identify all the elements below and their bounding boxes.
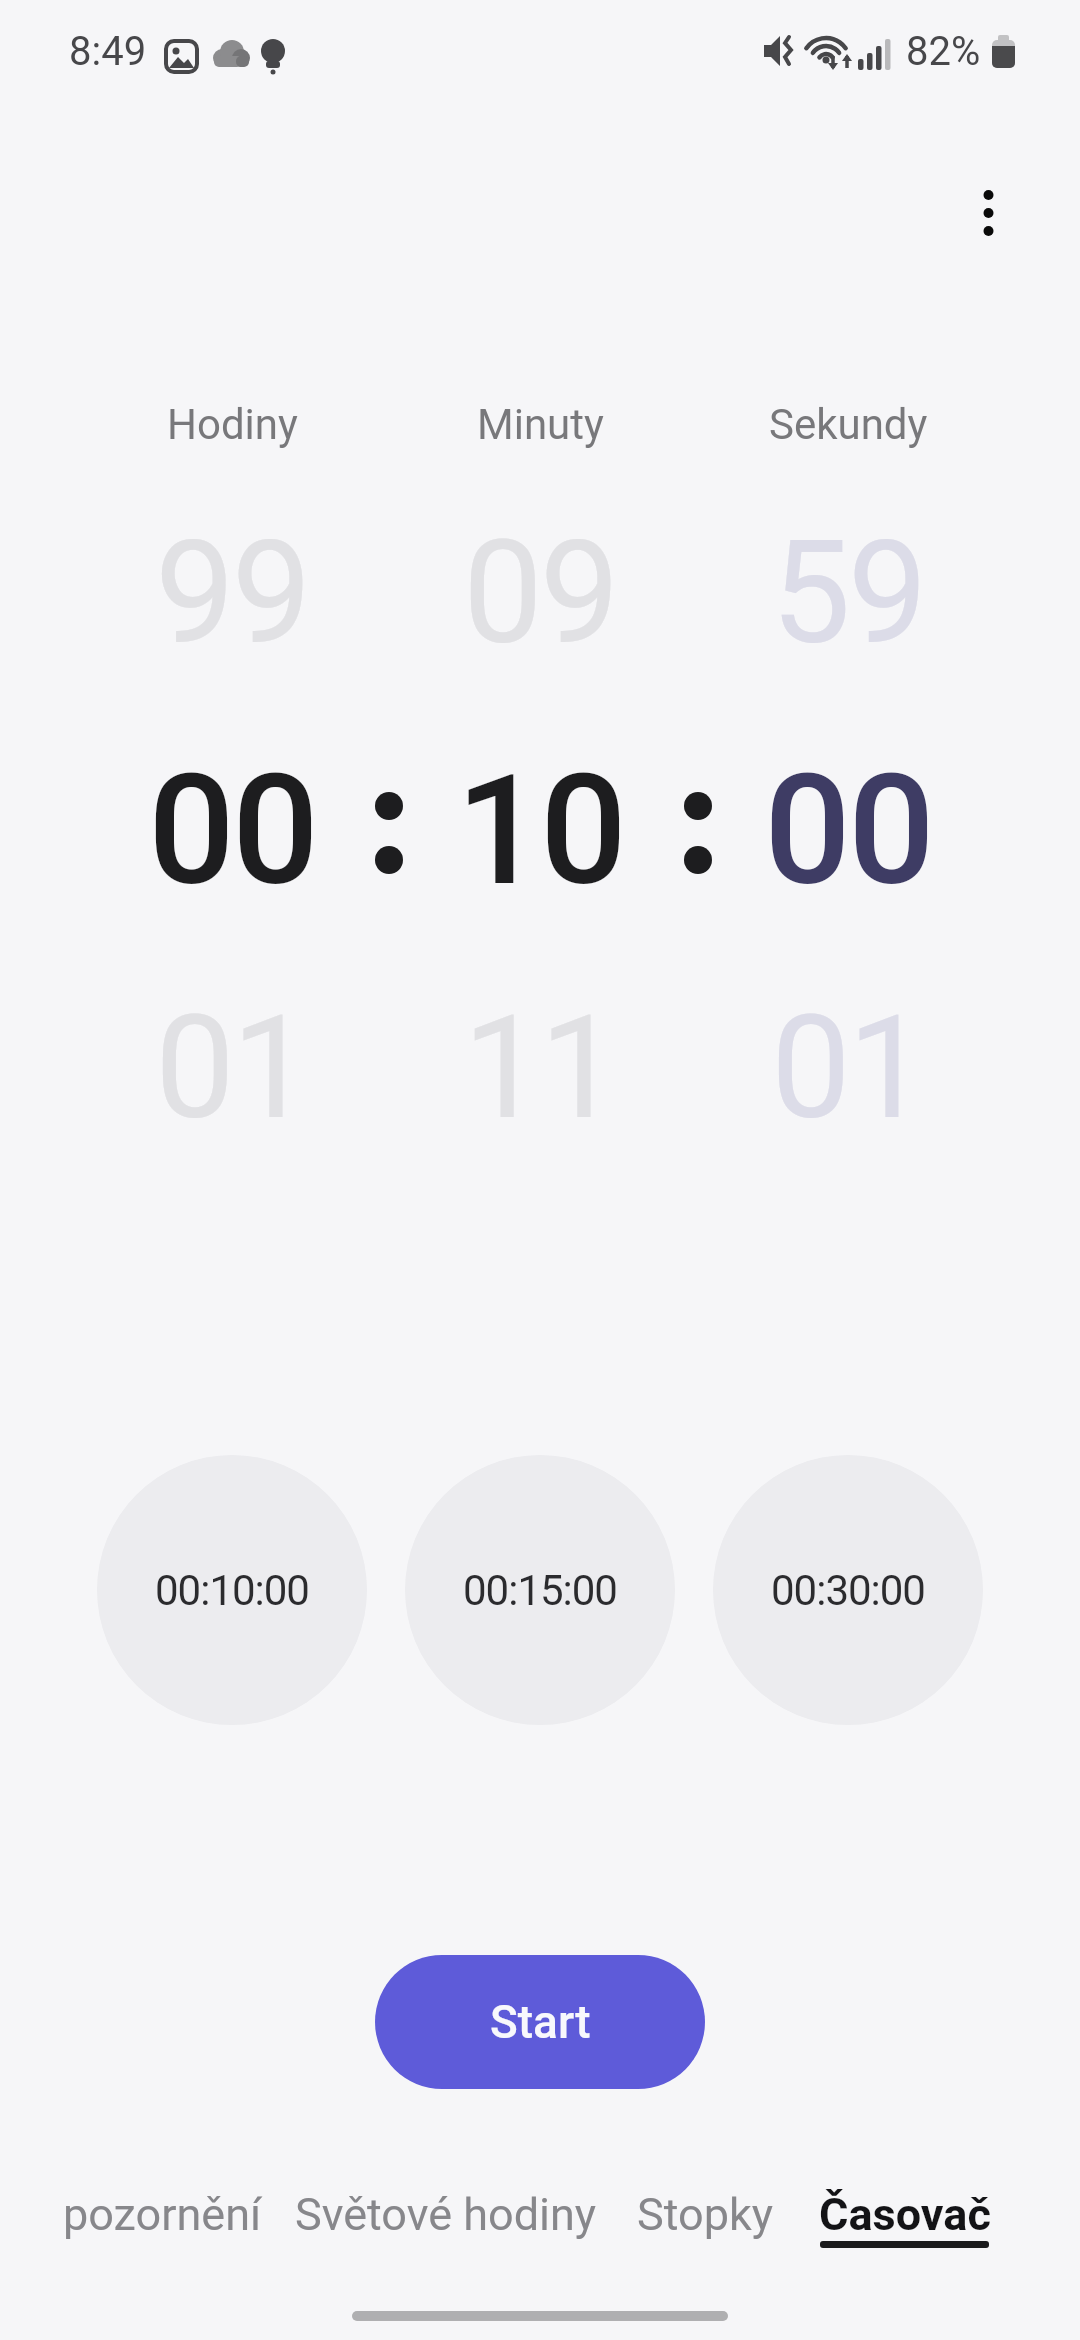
staticText: 00 [148,741,316,920]
button[interactable]: 00:10:00 [97,1455,367,1725]
button[interactable]: Stopky [615,2179,795,2249]
staticText: 99 [155,510,309,676]
button[interactable]: pozornění [32,2179,292,2249]
staticText: 00:15:00 [463,1566,617,1615]
staticText: 00 [764,741,932,920]
staticText: Stopky [637,2188,774,2241]
staticText: 01 [771,985,925,1151]
staticText: Světové hodiny [295,2188,597,2241]
staticText: 8:49 [69,28,147,75]
staticText: 09 [463,510,617,676]
staticText: 82% [906,28,981,75]
button[interactable]: 00:15:00 [405,1455,675,1725]
staticText: Hodiny [167,400,298,449]
button[interactable]: 00 [648,710,1048,950]
staticText: 00:30:00 [771,1566,925,1615]
staticText: 11 [463,985,617,1151]
staticText: Časovač [819,2188,991,2241]
staticText: pozornění [63,2188,262,2241]
button[interactable]: Světové hodiny [286,2179,606,2249]
staticText: 01 [155,985,309,1151]
button[interactable]: Start [375,1955,705,2089]
button[interactable] [958,165,1018,261]
button[interactable]: 00 [32,710,432,950]
staticText: 59 [771,510,925,676]
staticText: Sekundy [769,400,928,449]
staticText: Minuty [477,400,604,449]
button[interactable]: 00:30:00 [713,1455,983,1725]
button[interactable]: Časovač [805,2179,1005,2249]
staticText: 10 [456,741,624,920]
staticText: 00:10:00 [155,1566,309,1615]
staticText: Start [490,1995,591,2049]
button[interactable]: 10 [340,710,740,950]
